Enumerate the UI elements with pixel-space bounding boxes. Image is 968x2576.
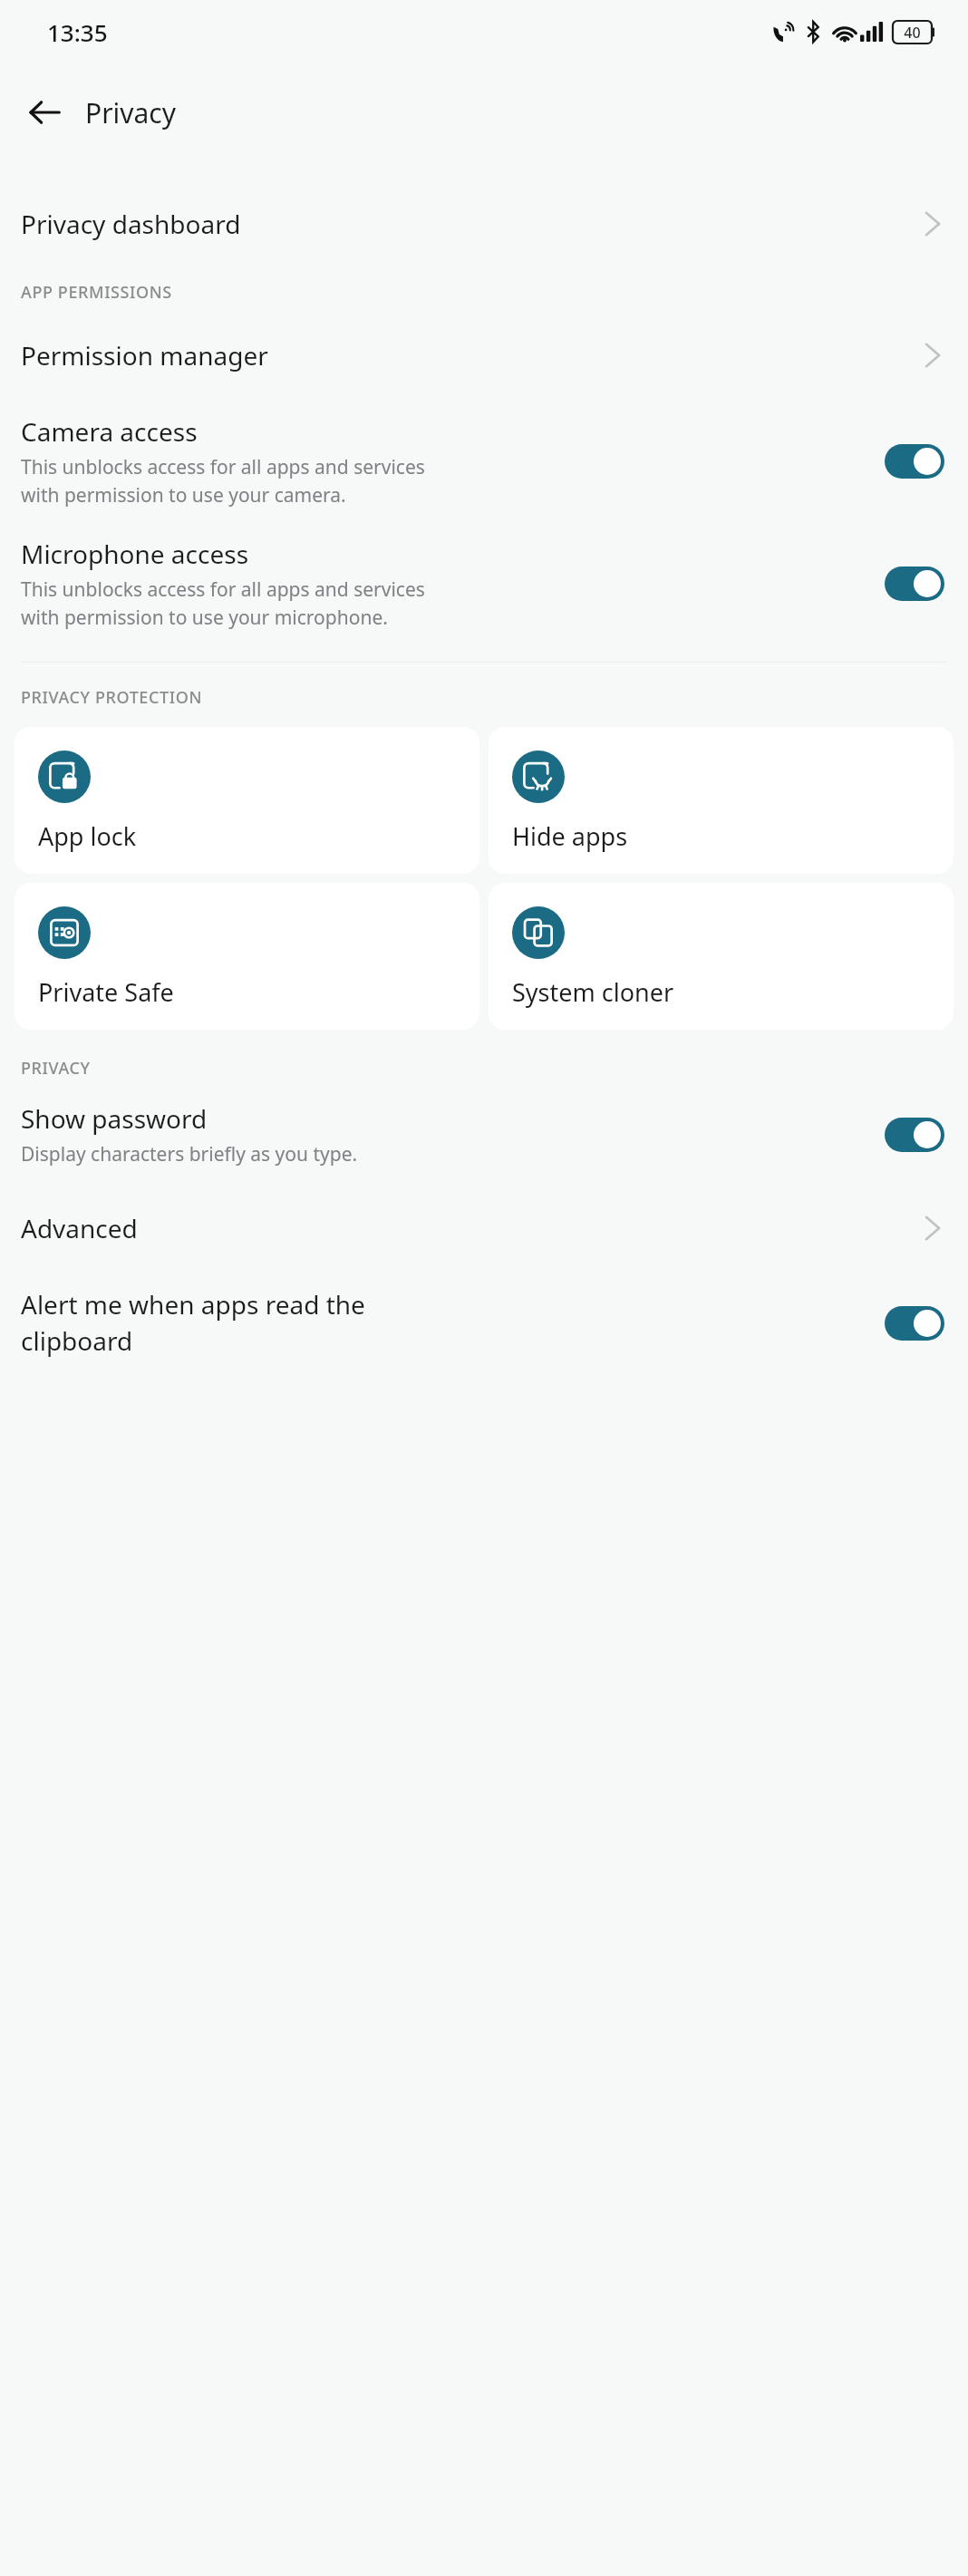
button[interactable]: App lock xyxy=(15,727,479,874)
staticText: Camera access xyxy=(21,414,198,449)
staticText: Privacy xyxy=(85,94,177,131)
staticText: System cloner xyxy=(512,975,674,1009)
button[interactable]: Camera access xyxy=(0,405,968,517)
staticText: App lock xyxy=(38,819,137,853)
button[interactable]: Alert me when apps read the clipboard xyxy=(0,1278,968,1368)
button[interactable]: Microphone access xyxy=(0,528,968,639)
staticText: Show password xyxy=(21,1101,208,1136)
staticText: 40 xyxy=(893,23,932,43)
staticText: Private Safe xyxy=(38,975,174,1009)
staticText: Hide apps xyxy=(512,819,628,853)
staticText: Privacy dashboard xyxy=(21,207,923,241)
staticText: PRIVACY xyxy=(21,1057,968,1080)
staticText: Microphone access xyxy=(21,537,249,571)
staticText: Advanced xyxy=(21,1211,923,1245)
button[interactable]: Advanced xyxy=(0,1189,968,1267)
button[interactable]: Toggle on xyxy=(885,567,944,601)
button[interactable]: Back xyxy=(16,84,73,140)
button[interactable]: System cloner xyxy=(489,883,953,1030)
staticText: Permission manager xyxy=(21,338,923,373)
staticText: Alert me when apps read the clipboard xyxy=(21,1287,365,1359)
staticText: This unblocks access for all apps and se… xyxy=(21,576,425,630)
staticText: Display characters briefly as you type. xyxy=(21,1141,358,1167)
staticText: PRIVACY PROTECTION xyxy=(21,686,968,709)
button[interactable]: Permission manager xyxy=(0,316,968,394)
staticText: This unblocks access for all apps and se… xyxy=(21,454,425,508)
button[interactable]: Private Safe xyxy=(15,883,479,1030)
button[interactable]: Privacy dashboard xyxy=(0,185,968,263)
staticText: 13:35 xyxy=(47,16,108,48)
button[interactable]: Toggle on xyxy=(885,1306,944,1341)
button[interactable]: Hide apps xyxy=(489,727,953,874)
button[interactable]: Toggle on xyxy=(885,1118,944,1152)
staticText: APP PERMISSIONS xyxy=(21,281,968,304)
button[interactable]: Toggle on xyxy=(885,444,944,479)
button[interactable]: Show password xyxy=(0,1092,968,1177)
